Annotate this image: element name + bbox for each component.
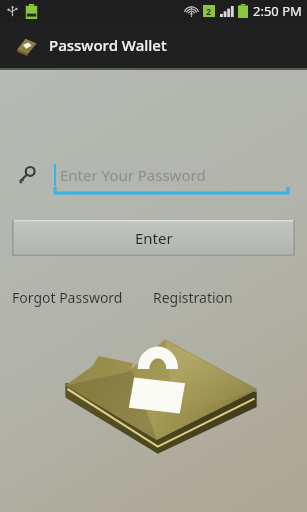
button[interactable]: Enter <box>12 220 295 256</box>
staticText: Password Wallet <box>49 35 167 55</box>
button[interactable]: Enter Your Password <box>54 156 289 194</box>
staticText: Enter <box>135 228 173 248</box>
staticText: Registration <box>153 288 299 307</box>
button[interactable]: Registration <box>153 286 307 309</box>
button[interactable]: Password key <box>14 162 40 188</box>
staticText: 2 <box>206 5 212 17</box>
staticText: Forgot Password <box>12 288 123 307</box>
staticText: Enter Your Password <box>60 165 206 185</box>
button[interactable]: Forgot Password <box>0 286 153 309</box>
staticText: 2:50 PM <box>253 2 302 20</box>
